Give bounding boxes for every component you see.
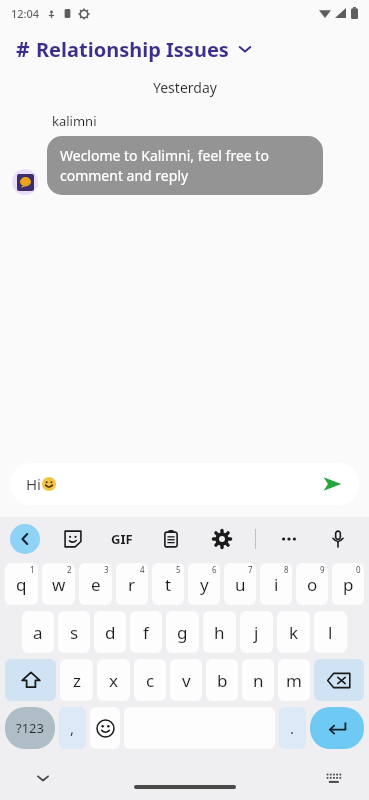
staticText: Hi	[26, 474, 41, 494]
button[interactable]: More options	[276, 526, 302, 552]
staticText: Weclome to Kalimni, feel free to comment…	[60, 146, 310, 185]
button[interactable]: Clipboard	[158, 526, 184, 552]
button[interactable]: e	[79, 563, 112, 605]
button[interactable]: Hi	[10, 463, 359, 505]
button[interactable]: s	[58, 611, 90, 653]
staticText: y	[200, 573, 209, 596]
button[interactable]: i	[260, 563, 292, 605]
button[interactable]: b	[206, 659, 238, 701]
staticText: e	[91, 573, 101, 596]
staticText: 0	[356, 564, 361, 575]
button[interactable]: y	[188, 563, 220, 605]
button[interactable]: Weclome to Kalimni, feel free to comment…	[47, 136, 323, 195]
button[interactable]: a	[22, 611, 54, 653]
button[interactable]: Hide keyboard	[30, 765, 56, 791]
staticText: s	[70, 621, 79, 644]
staticText: q	[16, 573, 27, 596]
staticText: u	[235, 573, 246, 596]
staticText: 7	[248, 564, 253, 575]
staticText: n	[253, 669, 264, 692]
staticText: c	[146, 669, 155, 692]
staticText: a	[33, 621, 43, 644]
staticText: o	[307, 573, 318, 596]
button[interactable]: n	[242, 659, 274, 701]
staticText: m	[286, 669, 302, 692]
staticText: 8	[284, 564, 289, 575]
staticText: b	[217, 669, 228, 692]
button[interactable]: Shift	[5, 659, 56, 701]
staticText: #	[16, 35, 30, 64]
button[interactable]: Comma	[59, 707, 86, 749]
button[interactable]: Back	[10, 524, 40, 554]
staticText: f	[143, 621, 149, 644]
staticText: 5	[176, 564, 181, 575]
staticText: .	[290, 718, 295, 738]
button[interactable]: Period	[279, 707, 306, 749]
button[interactable]: Settings	[209, 526, 235, 552]
button[interactable]: Backspace	[314, 659, 364, 701]
staticText: GIF	[111, 530, 133, 548]
button[interactable]: GIF	[111, 530, 133, 548]
button[interactable]: m	[278, 659, 310, 701]
staticText: v	[182, 669, 191, 692]
button[interactable]: d	[94, 611, 126, 653]
staticText: ,	[70, 718, 75, 738]
staticText: z	[73, 669, 81, 692]
staticText: t	[165, 573, 172, 596]
button[interactable]: r	[116, 563, 148, 605]
staticText: 6	[212, 564, 217, 575]
staticText: x	[109, 669, 118, 692]
staticText: 9	[320, 564, 325, 575]
button[interactable]: t	[152, 563, 184, 605]
button[interactable]: l	[314, 611, 347, 653]
button[interactable]: Stickers	[60, 526, 86, 552]
staticText: 3	[104, 564, 109, 575]
staticText: w	[52, 573, 66, 596]
button[interactable]: Voice input	[325, 526, 351, 552]
button[interactable]: u	[224, 563, 256, 605]
button[interactable]: j	[240, 611, 273, 653]
staticText: 1	[30, 564, 35, 575]
button[interactable]: h	[203, 611, 236, 653]
button[interactable]: p	[332, 563, 364, 605]
staticText: ?123	[16, 719, 44, 737]
button[interactable]: g	[166, 611, 199, 653]
button[interactable]: q	[5, 563, 38, 605]
button[interactable]: x	[97, 659, 130, 701]
button[interactable]: ?123	[5, 707, 55, 749]
staticText: k	[289, 621, 299, 644]
staticText: r	[128, 573, 136, 596]
button[interactable]: Emoji	[90, 707, 120, 749]
button[interactable]: c	[134, 659, 166, 701]
button[interactable]: Change keyboard	[321, 765, 347, 791]
button[interactable]: Enter	[310, 707, 364, 749]
staticText: 4	[140, 564, 145, 575]
staticText: kalimni	[52, 112, 97, 130]
staticText: j	[254, 621, 259, 644]
staticText: d	[105, 621, 116, 644]
button[interactable]: k	[277, 611, 310, 653]
button[interactable]: Send	[319, 471, 345, 497]
staticText: g	[177, 621, 188, 644]
staticText: h	[214, 621, 225, 644]
button[interactable]: f	[130, 611, 162, 653]
button[interactable]: o	[296, 563, 328, 605]
button[interactable]: v	[170, 659, 202, 701]
staticText: 12:04	[11, 6, 40, 21]
staticText: 2	[67, 564, 72, 575]
staticText: p	[343, 573, 354, 596]
button[interactable]: #	[0, 26, 369, 72]
button[interactable]: w	[42, 563, 75, 605]
button[interactable]: z	[60, 659, 93, 701]
staticText: i	[274, 573, 279, 596]
staticText: Yesterday	[153, 78, 217, 97]
staticText: l	[328, 621, 333, 644]
staticText: Relationship Issues	[36, 36, 229, 63]
